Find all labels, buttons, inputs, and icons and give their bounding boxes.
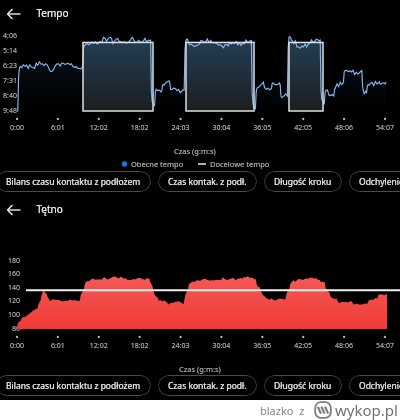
button[interactable]: Back (2, 198, 28, 224)
staticText: wykop.pl (335, 400, 398, 420)
staticText: Czas kontak. z podł. (168, 380, 247, 392)
button[interactable]: Back (2, 2, 28, 28)
button[interactable]: Bilans czasu kontaktu z podłożem (0, 375, 151, 396)
staticText: Długość kroku (274, 176, 332, 188)
staticText: Bilans czasu kontaktu z podłożem (6, 176, 141, 188)
staticText: Odchylenie pionowe (359, 380, 400, 392)
button[interactable]: Odchylenie pionowe (349, 171, 400, 192)
button[interactable]: Odchylenie pionowe (349, 375, 400, 396)
staticText: blazko z (260, 403, 305, 418)
staticText: Czas kontak. z podł. (168, 176, 247, 188)
staticText: Długość kroku (274, 380, 332, 392)
button[interactable]: Długość kroku (264, 375, 342, 396)
button[interactable]: Czas kontak. z podł. (158, 171, 257, 192)
button[interactable]: Bilans czasu kontaktu z podłożem (0, 171, 151, 192)
staticText: Odchylenie pionowe (359, 176, 400, 188)
button[interactable]: Długość kroku (264, 171, 342, 192)
staticText: Bilans czasu kontaktu z podłożem (6, 380, 141, 392)
button[interactable]: Czas kontak. z podł. (158, 375, 257, 396)
